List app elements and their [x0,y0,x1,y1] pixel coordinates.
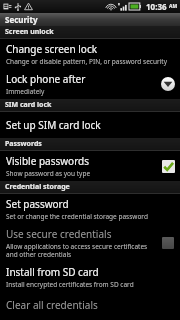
button[interactable]: Expand lock timeout options [160,76,176,92]
button[interactable]: Clear all credentials [0,292,180,318]
staticText: Change or disable pattern, PIN, or passw… [6,57,167,66]
button[interactable]: Use secure credentials, off, disabled [160,235,176,251]
button[interactable]: Change screen lock [0,39,180,69]
staticText: Screen unlock [5,27,54,37]
staticText: Show password as you type [6,169,91,178]
button[interactable]: Install from SD card [0,262,180,292]
button[interactable]: Lock phone after [0,69,180,99]
staticText: Change screen lock [6,42,98,56]
staticText: 10:36 [146,1,167,12]
staticText: Install encrypted certificates from SD c… [6,280,134,289]
button[interactable]: Visible passwords, on [160,158,176,174]
staticText: Set up SIM card lock [6,118,101,132]
staticText: SIM card lock [5,100,52,110]
staticText: AM [169,3,178,10]
staticText: Set password [6,197,69,211]
staticText: Use secure credentials [6,227,112,241]
staticText: Allow applications to access secure cert… [6,242,156,259]
staticText: Lock phone after [6,72,86,86]
staticText: Install from SD card [6,265,99,279]
button[interactable]: Use secure credentials [0,224,180,262]
staticText: Credential storage [5,182,70,192]
staticText: Visible passwords [6,154,90,168]
staticText: Passwords [5,139,42,149]
staticText: Clear all credentials [6,298,98,312]
staticText: Set or change the credential storage pas… [6,212,148,221]
button[interactable]: Set up SIM card lock [0,112,180,138]
staticText: Security [5,14,38,25]
button[interactable]: Visible passwords [0,151,180,181]
button[interactable]: Set password [0,194,180,224]
staticText: Immediately [6,87,45,96]
